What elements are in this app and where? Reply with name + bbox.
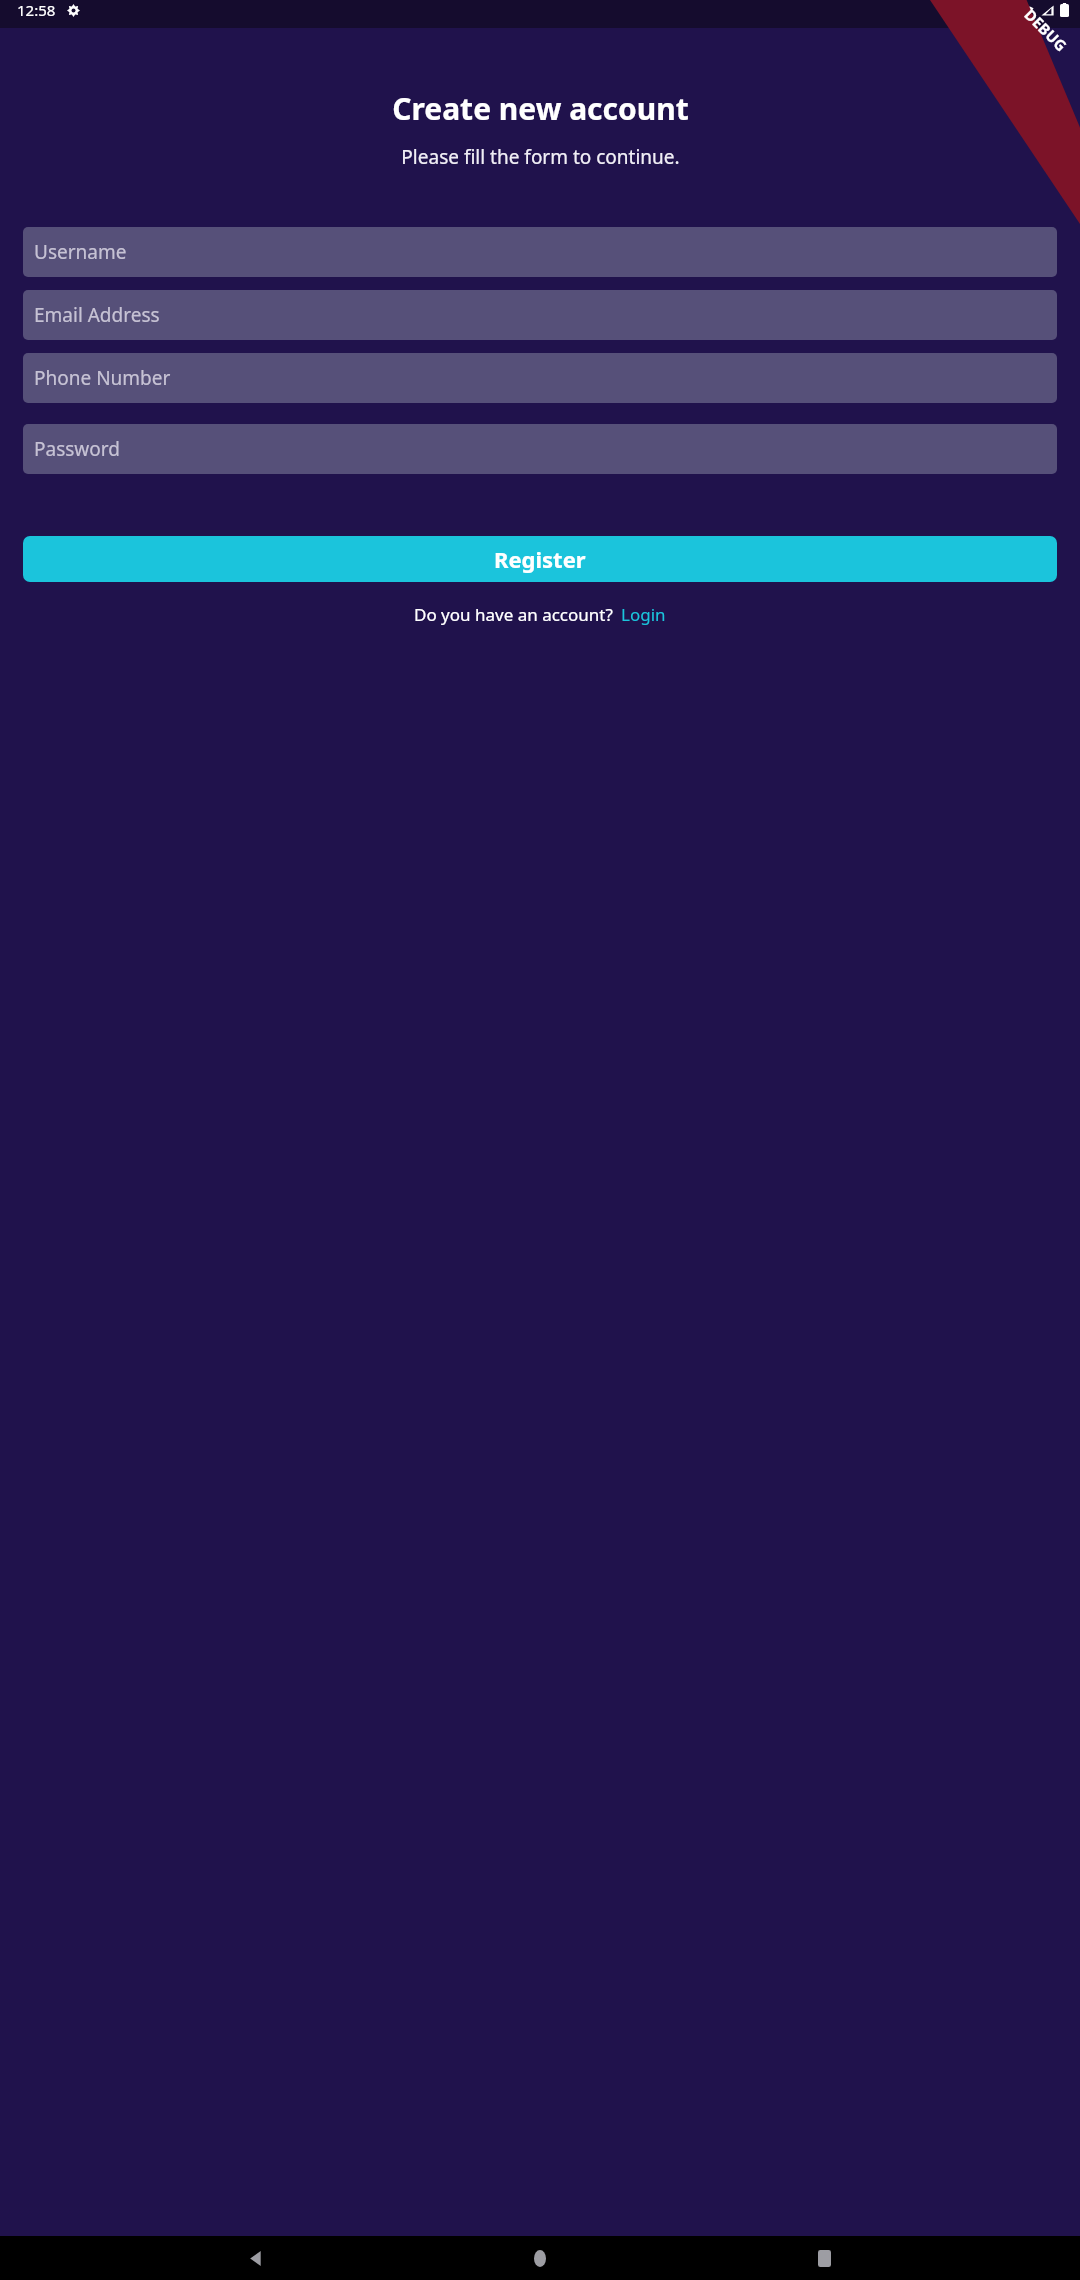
staticText: DEBUG — [1020, 4, 1071, 55]
button[interactable]: Register — [23, 536, 1057, 582]
button[interactable]: Login — [620, 603, 667, 626]
staticText: Password — [34, 436, 120, 462]
staticText: Username — [34, 239, 127, 265]
staticText: Email Address — [34, 302, 160, 328]
staticText: Login — [621, 603, 666, 626]
button[interactable]: Recent apps — [796, 2236, 852, 2280]
button[interactable]: Email Address — [23, 290, 1057, 340]
button[interactable]: Back — [228, 2236, 284, 2280]
button[interactable]: Home — [512, 2236, 568, 2280]
staticText: 12:58 — [17, 0, 56, 20]
button[interactable]: Username — [23, 227, 1057, 277]
staticText: Please fill the form to continue. — [401, 144, 680, 170]
button[interactable]: Phone Number — [23, 353, 1057, 403]
staticText: Do you have an account? — [414, 603, 613, 626]
staticText: Phone Number — [34, 365, 171, 391]
staticText: Create new account — [392, 88, 689, 129]
staticText: Register — [494, 544, 586, 574]
button[interactable]: Password — [23, 424, 1057, 474]
